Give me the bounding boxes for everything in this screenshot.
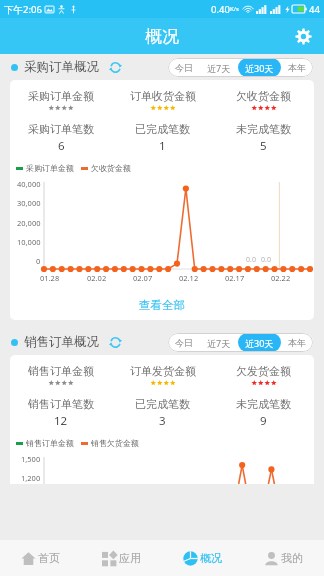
button[interactable]: 近7天	[200, 58, 238, 77]
staticText: 采购订单金额	[26, 163, 74, 173]
button[interactable]: 概况	[162, 540, 243, 576]
button[interactable]: 采购订单金额	[10, 80, 314, 320]
staticText: 02.12	[179, 273, 199, 283]
button[interactable]: Settings	[288, 21, 318, 51]
button[interactable]: Refresh	[106, 58, 124, 76]
staticText: 欠收货金额	[91, 163, 131, 173]
button[interactable]: Refresh	[106, 333, 124, 351]
staticText: 已完成笔数	[135, 397, 190, 411]
staticText: 0.0	[246, 255, 256, 265]
staticText: 10,000	[17, 237, 41, 247]
staticText: 40,000	[17, 179, 41, 189]
staticText: 我的	[281, 551, 303, 565]
staticText: 01.28	[40, 273, 60, 283]
button[interactable]: 近7天	[200, 333, 238, 352]
staticText: 02.02	[87, 273, 107, 283]
staticText: 销售订单笔数	[28, 397, 94, 411]
staticText: 12	[54, 413, 68, 429]
staticText: 下午2:06	[4, 3, 42, 16]
staticText: 1	[159, 138, 166, 154]
staticText: 首页	[38, 551, 60, 565]
button[interactable]: 首页	[0, 540, 81, 576]
staticText: 应用	[119, 551, 141, 565]
staticText: 44	[309, 3, 320, 16]
staticText: 概况	[200, 551, 222, 565]
button[interactable]: 近30天	[238, 333, 281, 352]
staticText: 今日	[175, 337, 193, 348]
staticText: 未完成笔数	[236, 122, 291, 136]
button[interactable]: 销售订单金额	[10, 355, 314, 484]
button[interactable]: 本年	[281, 333, 313, 352]
staticText: 本年	[288, 337, 306, 348]
staticText: 近30天	[245, 337, 274, 349]
staticText: 销售订单概况	[24, 334, 99, 350]
button[interactable]: 我的	[243, 540, 324, 576]
button[interactable]: 今日	[168, 58, 200, 77]
staticText: 采购订单金额	[28, 89, 94, 103]
button[interactable]: 本年	[281, 58, 313, 77]
button[interactable]: 应用	[81, 540, 162, 576]
staticText: 9	[260, 413, 267, 429]
staticText: 本年	[288, 62, 306, 73]
staticText: K/s	[230, 5, 239, 13]
staticText: 采购订单概况	[24, 59, 99, 75]
staticText: 3	[159, 413, 166, 429]
staticText: 02.17	[225, 273, 245, 283]
staticText: 1,200	[21, 473, 41, 483]
staticText: 采购订单笔数	[28, 122, 94, 136]
staticText: 欠发货金额	[236, 364, 291, 378]
staticText: 销售订单金额	[28, 364, 94, 378]
staticText: 02.22	[271, 273, 291, 283]
staticText: 已完成笔数	[135, 122, 190, 136]
staticText: 20,000	[17, 218, 41, 228]
staticText: 销售欠货金额	[91, 438, 139, 448]
staticText: 6	[58, 138, 65, 154]
staticText: 近7天	[207, 337, 231, 349]
staticText: 5	[260, 138, 267, 154]
staticText: 订单收货金额	[130, 89, 196, 103]
staticText: 查看全部	[139, 298, 185, 312]
staticText: 1,500	[21, 454, 41, 464]
button[interactable]: 近30天	[238, 58, 281, 77]
staticText: 欠收货金额	[236, 89, 291, 103]
staticText: 0	[36, 256, 41, 266]
staticText: 0.0	[261, 255, 271, 265]
staticText: 订单发货金额	[130, 364, 196, 378]
button[interactable]: 查看全部	[10, 290, 314, 320]
staticText: 概况	[145, 26, 179, 47]
staticText: 02.07	[133, 273, 153, 283]
staticText: 未完成笔数	[236, 397, 291, 411]
staticText: 30,000	[17, 198, 41, 208]
staticText: 今日	[175, 62, 193, 73]
staticText: 近30天	[245, 62, 274, 74]
staticText: 近7天	[207, 62, 231, 74]
button[interactable]: 今日	[168, 333, 200, 352]
staticText: 销售订单金额	[26, 438, 74, 448]
staticText: 0.40	[211, 3, 230, 16]
